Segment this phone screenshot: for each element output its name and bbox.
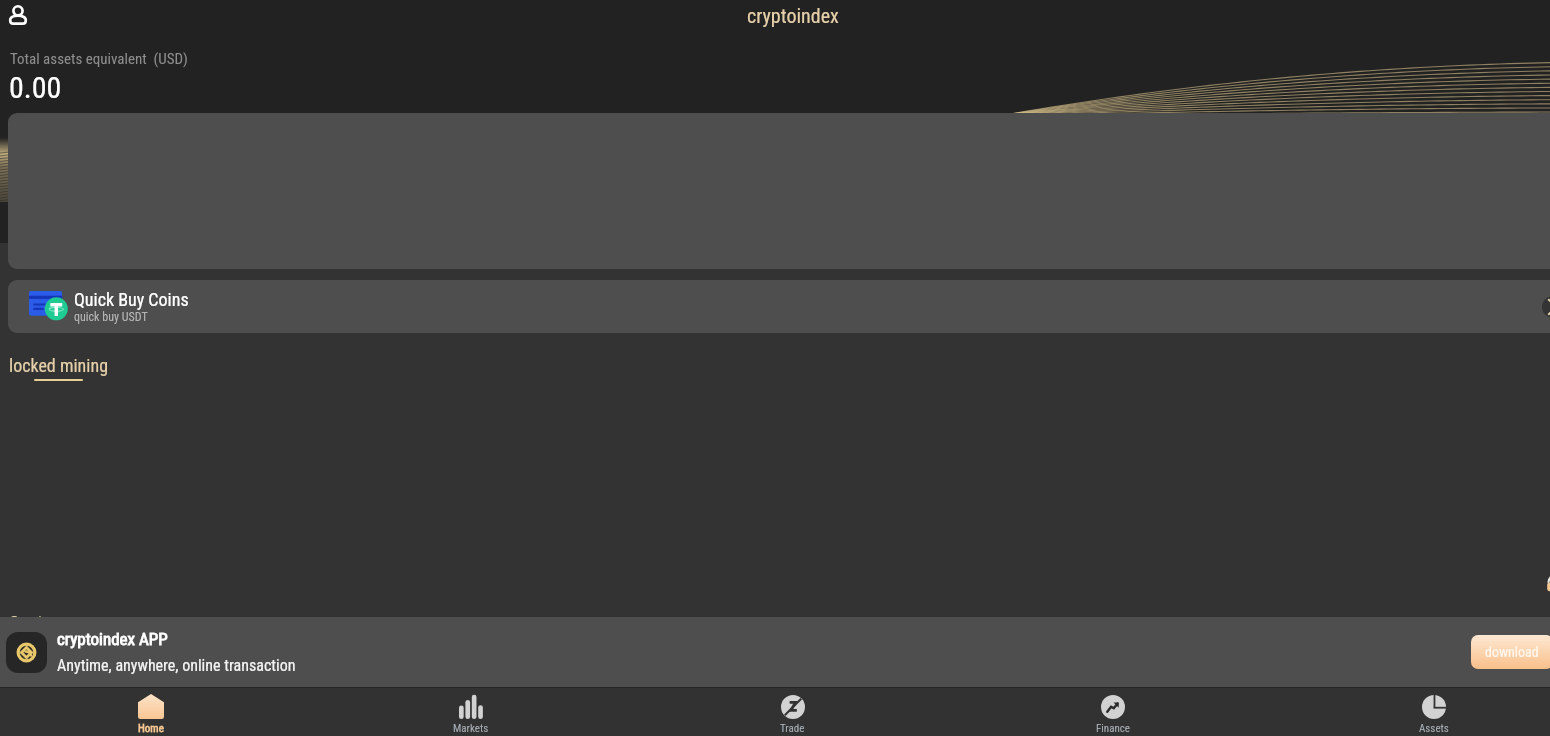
staticText: Assets <box>1419 722 1449 735</box>
staticText: Home <box>138 722 164 735</box>
button[interactable]: Profile <box>5 2 31 28</box>
button[interactable]: Markets <box>423 687 519 736</box>
button[interactable]: download <box>1471 635 1550 669</box>
staticText: locked mining <box>9 355 109 376</box>
staticText: Finance <box>1096 722 1130 735</box>
button[interactable]: More <box>1542 296 1550 318</box>
button[interactable]: Customer service <box>1536 561 1550 605</box>
staticText: Trade <box>780 722 805 735</box>
staticText: Quotes <box>9 612 60 633</box>
staticText: quick buy USDT <box>74 310 148 324</box>
staticText: Quick Buy Coins <box>74 289 189 310</box>
button[interactable]: Finance <box>1065 687 1161 736</box>
button[interactable]: Trade <box>744 687 840 736</box>
staticText: Total assets equivalent (USD) <box>10 50 188 68</box>
button[interactable]: Assets <box>1386 687 1482 736</box>
staticText: cryptoindex APP <box>57 629 168 649</box>
button[interactable]: Home <box>103 687 199 736</box>
button[interactable]: Quick Buy Coins <box>8 280 1550 333</box>
staticText: cryptoindex <box>747 4 839 27</box>
staticText: Markets <box>453 722 489 735</box>
staticText: download <box>1485 644 1539 660</box>
staticText: Anytime, anywhere, online transaction <box>57 656 296 675</box>
staticText: 0.00 <box>9 70 62 105</box>
